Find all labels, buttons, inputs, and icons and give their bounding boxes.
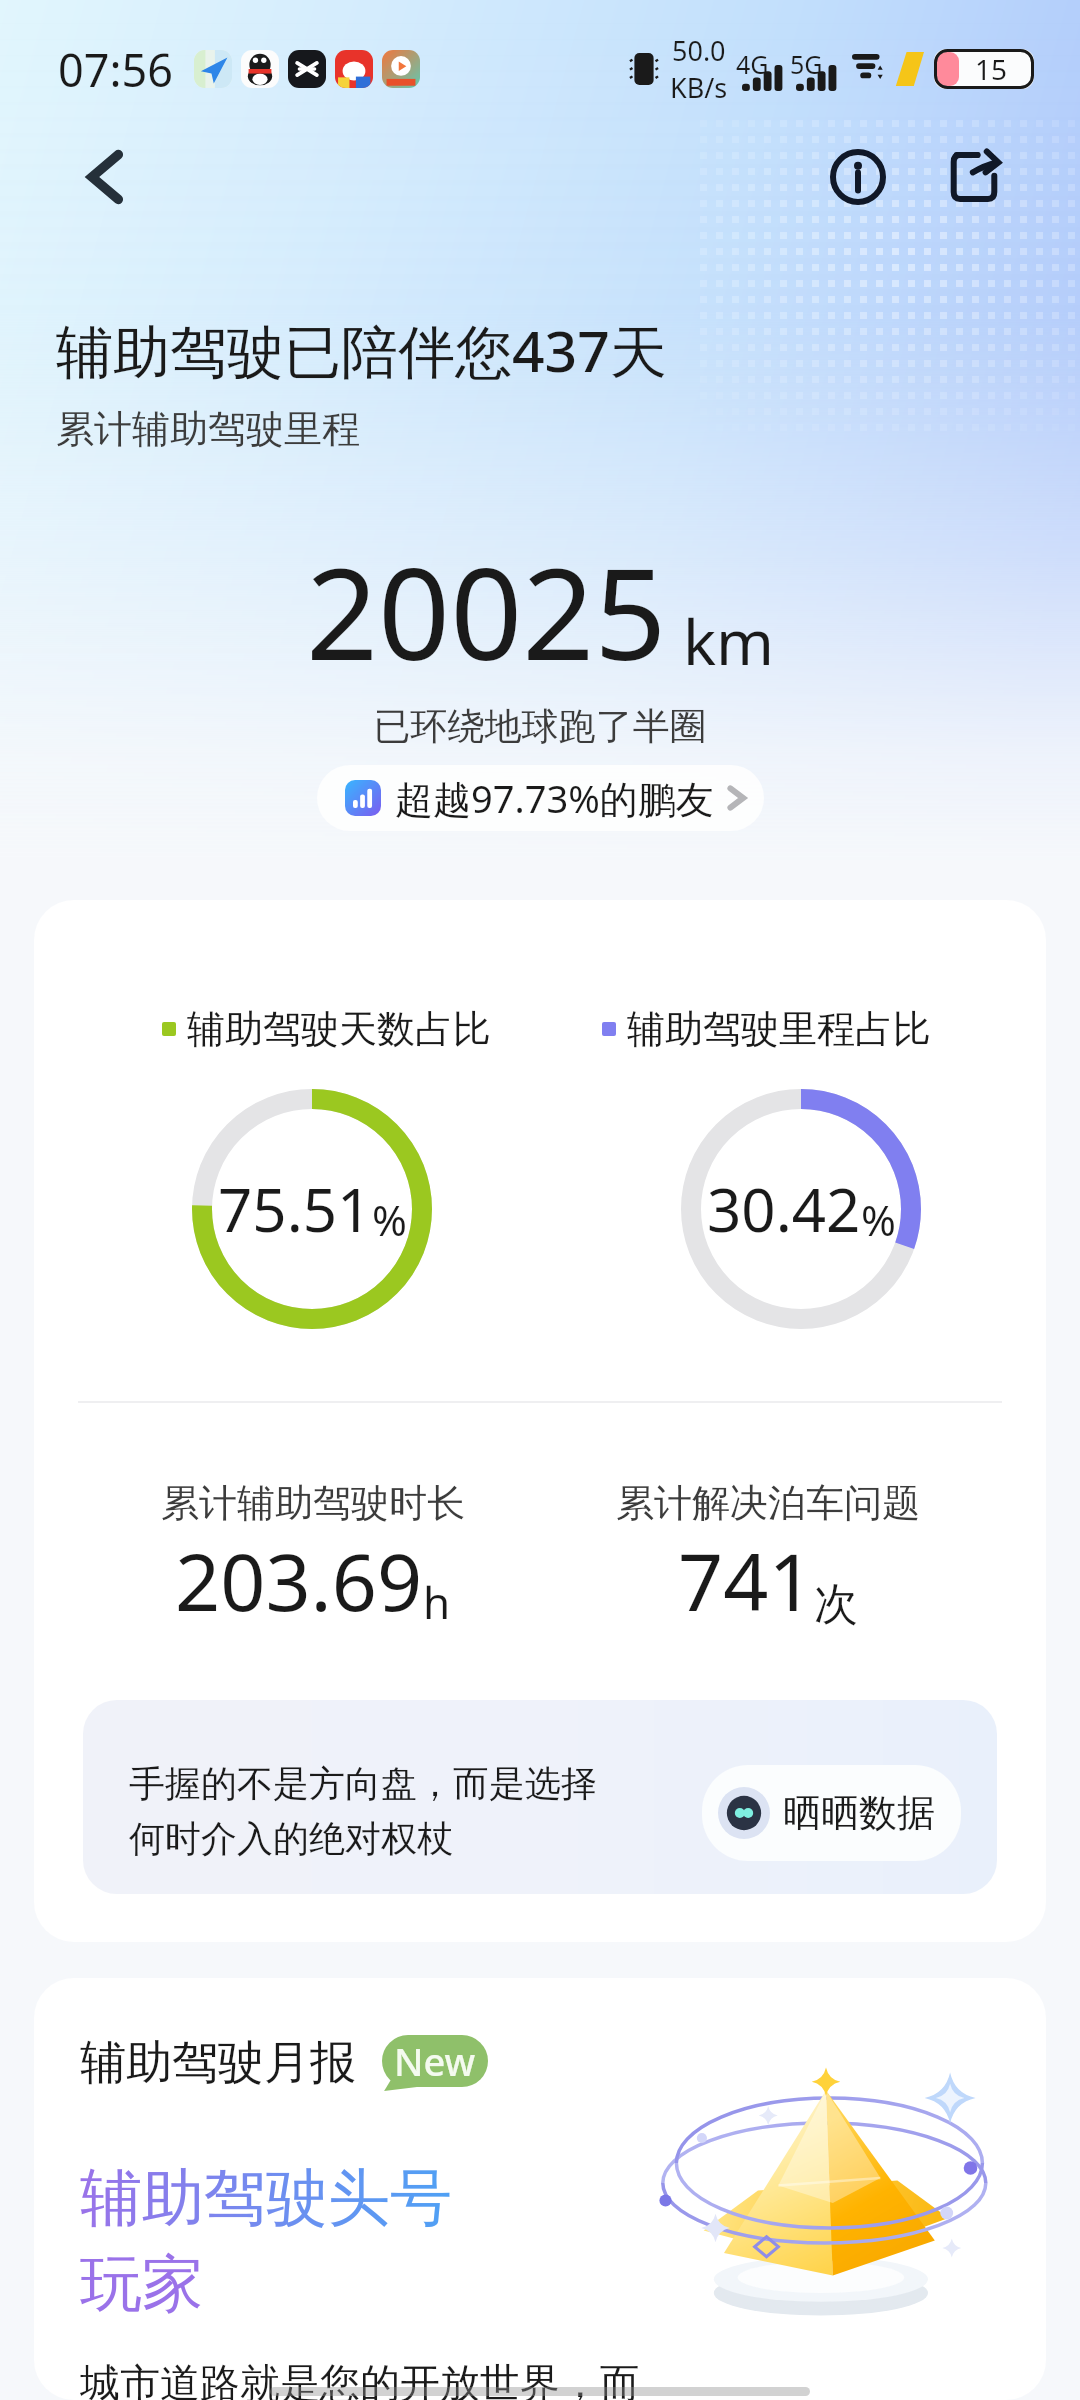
staticText: 城市道路就是您的开放世界，而 xyxy=(80,2358,640,2400)
staticText: 累计辅助驾驶里程 xyxy=(56,405,360,453)
staticText: 辅助驾驶月报 xyxy=(80,2034,356,2092)
staticText: 已环绕地球跑了半圈 xyxy=(0,703,1080,750)
button[interactable]: 辅助驾驶月报 xyxy=(34,1978,1046,2400)
staticText: 50.0 xyxy=(672,32,726,69)
staticText: 辅助驾驶里程占比 xyxy=(627,1005,931,1053)
staticText: New xyxy=(394,2035,476,2087)
staticText: % xyxy=(372,1191,407,1248)
button[interactable]: Share xyxy=(926,129,1022,225)
button[interactable]: 超越97.73%的鹏友 xyxy=(317,765,764,831)
staticText: 累计解决泊车问题 xyxy=(616,1479,920,1527)
staticText: 5G xyxy=(790,47,823,81)
staticText: 次 xyxy=(814,1577,858,1632)
staticText: 何时介入的绝对权杖 xyxy=(129,1816,453,1861)
staticText: 手握的不是方向盘，而是选择 xyxy=(129,1761,597,1806)
staticText: 203.69 xyxy=(175,1527,423,1635)
staticText: 07:56 xyxy=(58,39,174,100)
staticText: KB/s xyxy=(670,69,728,106)
staticText: h xyxy=(423,1572,451,1632)
staticText: 辅助驾驶已陪伴您437天 xyxy=(56,311,667,389)
staticText: 30.42 xyxy=(707,1168,861,1250)
staticText: km xyxy=(683,599,775,683)
button[interactable]: 晒晒数据 xyxy=(702,1765,961,1861)
staticText: 辅助驾驶天数占比 xyxy=(187,1005,491,1053)
staticText: 20025 xyxy=(306,525,667,697)
staticText: 累计辅助驾驶时长 xyxy=(161,1479,465,1527)
button[interactable]: Back xyxy=(54,125,158,229)
staticText: 75.51 xyxy=(218,1168,372,1250)
staticText: 741 xyxy=(678,1527,814,1635)
staticText: 辅助驾驶头号 xyxy=(80,2159,452,2237)
staticText: % xyxy=(861,1191,896,1248)
staticText: 晒晒数据 xyxy=(783,1789,935,1837)
staticText: 超越97.73%的鹏友 xyxy=(395,772,714,824)
button[interactable]: Info xyxy=(810,129,906,225)
staticText: 玩家 xyxy=(80,2245,204,2323)
staticText: 4G xyxy=(736,47,769,81)
staticText: 15 xyxy=(975,50,1008,88)
